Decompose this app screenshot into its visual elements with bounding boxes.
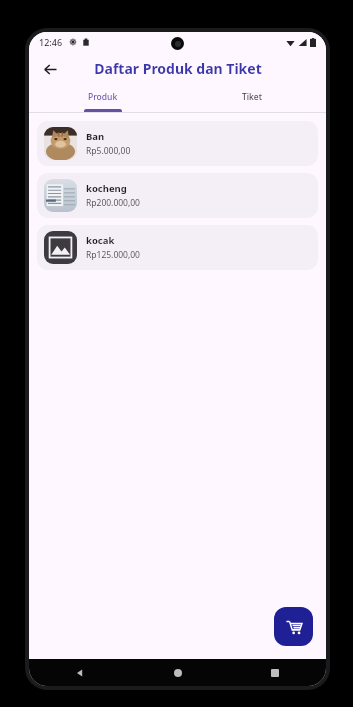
button[interactable]: Back xyxy=(69,662,91,684)
button[interactable]: Back xyxy=(35,54,65,84)
staticText: Ban xyxy=(86,130,105,143)
staticText: Rp125.000,00 xyxy=(86,249,140,261)
button[interactable]: kocak xyxy=(37,225,318,270)
button[interactable]: Home xyxy=(167,662,189,684)
button[interactable]: Tiket xyxy=(177,85,326,112)
staticText: kocheng xyxy=(86,182,127,195)
button[interactable]: Recent apps xyxy=(264,662,286,684)
staticText: Tiket xyxy=(242,91,262,103)
staticText: Produk xyxy=(88,91,118,103)
staticText: Daftar Produk dan Tiket xyxy=(94,59,262,78)
staticText: Rp5.000,00 xyxy=(86,145,131,157)
button[interactable]: Cart xyxy=(274,607,313,646)
button[interactable]: kocheng xyxy=(37,173,318,218)
staticText: 12:46 xyxy=(39,36,63,48)
staticText: kocak xyxy=(86,234,115,247)
staticText: Rp200.000,00 xyxy=(86,197,140,209)
button[interactable]: Ban xyxy=(37,121,318,166)
button[interactable]: Produk xyxy=(29,85,177,112)
